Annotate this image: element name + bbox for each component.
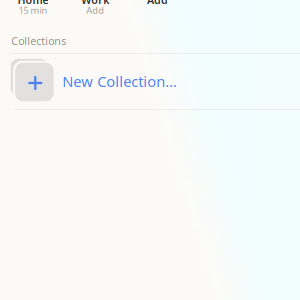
staticText: Add [86, 4, 104, 16]
button[interactable]: Home [2, 0, 64, 16]
staticText: Home [17, 0, 48, 7]
staticText: New Collection… [62, 72, 177, 91]
button[interactable]: Add [126, 0, 188, 16]
button[interactable]: Work [64, 0, 126, 16]
button[interactable]: New Collection… [12, 53, 300, 110]
staticText: Work [81, 0, 109, 7]
staticText: Add [147, 0, 168, 7]
staticText: Collections [11, 34, 66, 48]
staticText: 15 min [18, 4, 47, 16]
